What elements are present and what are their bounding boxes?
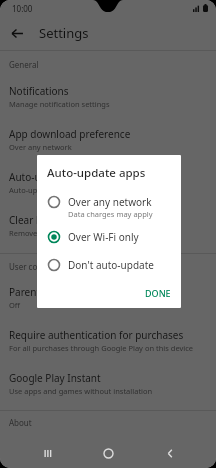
- staticText: 10:00: [12, 3, 33, 14]
- button[interactable]: Recents: [32, 438, 62, 468]
- button[interactable]: Google Play Instant: [0, 364, 216, 403]
- staticText: About: [9, 417, 32, 428]
- staticText: Notifications: [9, 84, 69, 98]
- staticText: User controls: [9, 261, 59, 272]
- button[interactable]: Notifications: [0, 77, 216, 116]
- staticText: Data charges may apply: [68, 209, 153, 219]
- button[interactable]: App download preference: [0, 120, 216, 159]
- staticText: General: [9, 59, 39, 70]
- staticText: Remove the searches from this device: [9, 228, 142, 238]
- button[interactable]: Back: [0, 16, 34, 50]
- staticText: Require authentication for purchases: [9, 328, 184, 342]
- staticText: Auto-update apps: [47, 165, 146, 181]
- staticText: Over any network: [9, 142, 72, 152]
- staticText: Over any network: [68, 195, 152, 209]
- staticText: Manage notification settings: [9, 99, 110, 109]
- staticText: For all purchases through Google Play on…: [9, 343, 194, 353]
- button[interactable]: Don't auto-update apps: [37, 254, 181, 276]
- staticText: Off: [9, 300, 21, 310]
- button[interactable]: Parental controls: [0, 278, 216, 317]
- staticText: Auto-update apps: [9, 170, 94, 184]
- button[interactable]: DONE: [135, 282, 181, 304]
- staticText: Clear local search history: [9, 213, 127, 227]
- staticText: DONE: [145, 287, 171, 299]
- staticText: Parental controls: [9, 285, 89, 299]
- staticText: Use apps and games without installation: [9, 386, 153, 396]
- button[interactable]: Clear local search history: [0, 206, 216, 245]
- staticText: Google Play Instant: [9, 371, 101, 385]
- button[interactable]: Over Wi-Fi only: [37, 226, 181, 248]
- button[interactable]: Require authentication for purchases: [0, 321, 216, 360]
- staticText: Don't auto-update apps: [68, 258, 171, 272]
- button[interactable]: Auto-update apps: [0, 163, 216, 202]
- staticText: Over Wi-Fi only: [68, 230, 139, 244]
- button[interactable]: Home: [93, 438, 123, 468]
- button[interactable]: Back: [155, 438, 185, 468]
- staticText: Settings: [39, 24, 89, 42]
- staticText: Auto-update apps over Wi-Fi only: [9, 185, 126, 195]
- button[interactable]: Over any network: [37, 191, 181, 223]
- staticText: App download preference: [9, 127, 131, 141]
